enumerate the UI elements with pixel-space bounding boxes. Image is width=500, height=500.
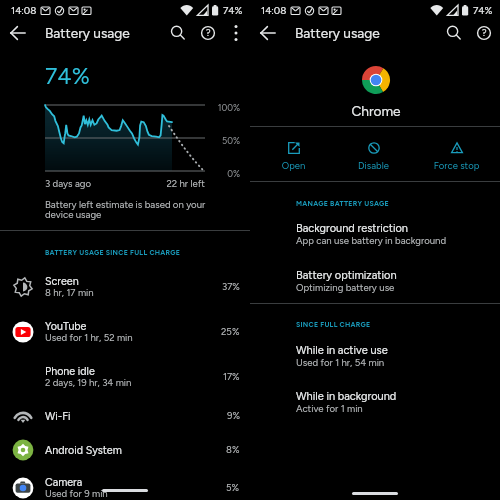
staticText: While in background (296, 390, 397, 403)
button[interactable]: Wi-Fi (0, 399, 250, 433)
button[interactable]: Search (443, 22, 465, 44)
button[interactable]: Help (473, 22, 495, 44)
button[interactable]: Open (252, 127, 335, 181)
staticText: 0% (190, 168, 240, 179)
staticText: 50% (190, 135, 240, 146)
staticText: 37% (222, 281, 240, 293)
staticText: Used for 1 hr, 52 min (45, 332, 133, 344)
button[interactable]: Battery optimization (250, 264, 500, 296)
staticText: 74% (45, 62, 90, 90)
staticText: Open (252, 160, 335, 171)
staticText: 100% (190, 102, 240, 113)
staticText: ? (206, 27, 211, 38)
staticText: 8% (226, 444, 240, 456)
button[interactable]: Android System (0, 433, 250, 467)
button[interactable]: Navigate up (7, 22, 29, 44)
button[interactable]: Navigate up (257, 22, 279, 44)
button[interactable]: Search (167, 22, 189, 44)
staticText: Chrome (251, 103, 500, 119)
staticText: Phone idle (45, 365, 95, 378)
staticText: Optimizing battery use (296, 282, 395, 294)
staticText: 74% (473, 4, 493, 16)
staticText: Wi-Fi (45, 410, 71, 423)
button[interactable]: While in active use (250, 339, 500, 371)
staticText: YouTube (45, 320, 87, 333)
staticText: 25% (221, 326, 240, 338)
staticText: Background restriction (296, 222, 408, 235)
staticText: 14:08 (261, 4, 287, 16)
button[interactable]: YouTube (0, 310, 250, 354)
staticText: BATTERY USAGE SINCE FULL CHARGE (45, 248, 181, 256)
staticText: App can use battery in background (296, 235, 447, 247)
staticText: Active for 1 min (296, 403, 363, 415)
button[interactable]: While in background (250, 385, 500, 417)
staticText: SINCE FULL CHARGE (296, 320, 371, 328)
staticText: Battery left estimate is based on your d… (45, 199, 235, 221)
button[interactable]: More options (226, 22, 248, 44)
staticText: 74% (223, 4, 243, 16)
staticText: Battery optimization (296, 269, 397, 282)
staticText: 14:08 (11, 4, 37, 16)
staticText: Force stop (415, 160, 498, 171)
staticText: 3 days ago (45, 178, 92, 190)
staticText: While in active use (296, 344, 388, 357)
button[interactable]: Help (197, 22, 219, 44)
button[interactable]: Phone idle (0, 355, 250, 399)
staticText: 2 days, 19 hr, 34 min (45, 377, 132, 389)
button[interactable]: Camera (0, 466, 250, 500)
staticText: Disable (332, 160, 415, 171)
staticText: Camera (45, 476, 83, 489)
staticText: 8 hr, 17 min (45, 287, 94, 299)
staticText: 5% (226, 482, 240, 494)
staticText: ? (482, 27, 487, 38)
button[interactable]: Background restriction (250, 217, 500, 249)
staticText: Screen (45, 275, 79, 288)
staticText: Used for 9 min (45, 488, 108, 500)
staticText: Battery usage (45, 25, 130, 41)
staticText: Battery usage (295, 25, 380, 41)
staticText: Used for 1 hr, 54 min (296, 357, 385, 369)
button[interactable]: Screen (0, 265, 250, 309)
staticText: 9% (227, 410, 240, 422)
staticText: 17% (223, 371, 240, 383)
staticText: Android System (45, 444, 122, 457)
staticText: MANAGE BATTERY USAGE (296, 199, 389, 207)
button[interactable]: Force stop (415, 127, 498, 181)
staticText: 22 hr left (120, 178, 205, 190)
button[interactable]: Disable (332, 127, 415, 181)
